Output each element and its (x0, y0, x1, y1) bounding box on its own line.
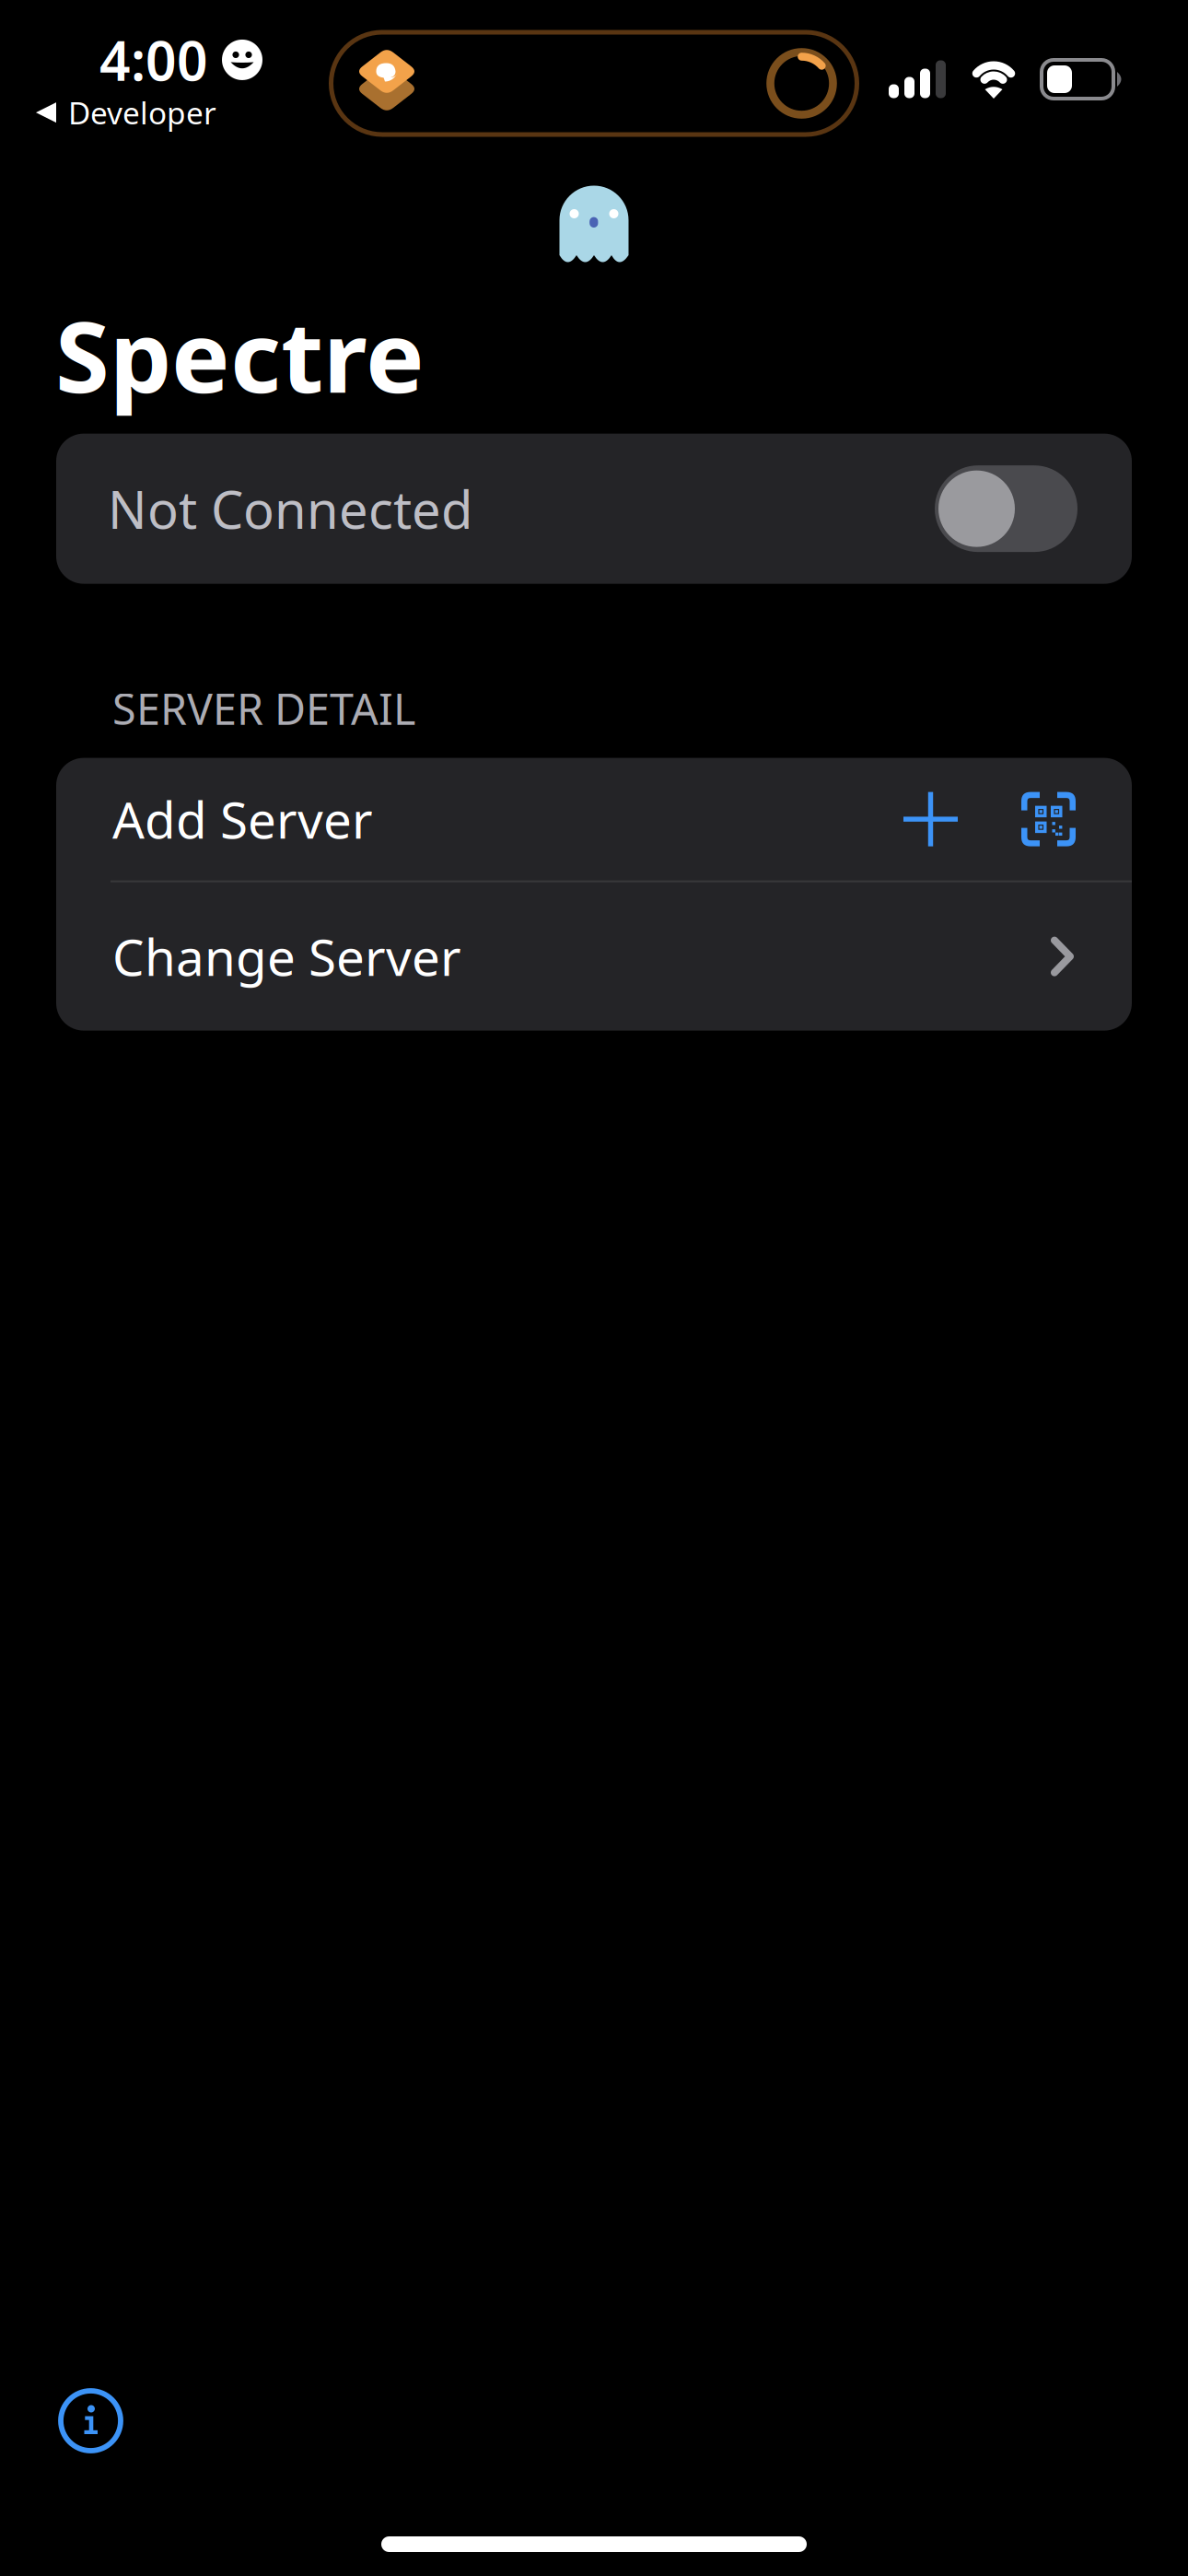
staticText: Add Server (112, 786, 373, 853)
staticText: Change Server (112, 923, 461, 990)
staticText: Not Connected (108, 474, 472, 543)
staticText: 4:00 (99, 24, 208, 96)
staticText: SERVER DETAIL (112, 680, 415, 737)
staticText: Spectre (55, 289, 425, 420)
button[interactable]: Change Server (56, 882, 1132, 1031)
button[interactable]: Add Server (56, 758, 1132, 880)
button[interactable]: Developer (0, 0, 216, 133)
button[interactable]: Not Connected (56, 434, 1132, 584)
staticText: Developer (68, 92, 216, 133)
button[interactable]: Info (48, 2378, 134, 2464)
